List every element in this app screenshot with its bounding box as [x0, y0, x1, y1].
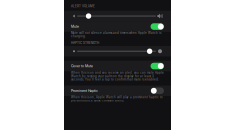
- button[interactable]: Mute: [64, 21, 171, 32]
- staticText: Prominent Haptic: [71, 89, 98, 93]
- staticText: When this is on and you receive an alert…: [71, 71, 164, 81]
- staticText: ALERT VOLUME: [71, 4, 95, 8]
- button[interactable]: Prominent Haptic: [64, 85, 171, 96]
- staticText: Mute will not silence alarms and timers …: [71, 31, 161, 38]
- staticText: When this is on, Apple Watch will play a…: [71, 96, 163, 102]
- staticText: Mute: [71, 24, 79, 28]
- button[interactable]: Cover to Mute: [64, 61, 171, 71]
- staticText: Cover to Mute: [71, 64, 93, 68]
- staticText: HAPTIC STRENGTH: [71, 41, 99, 45]
